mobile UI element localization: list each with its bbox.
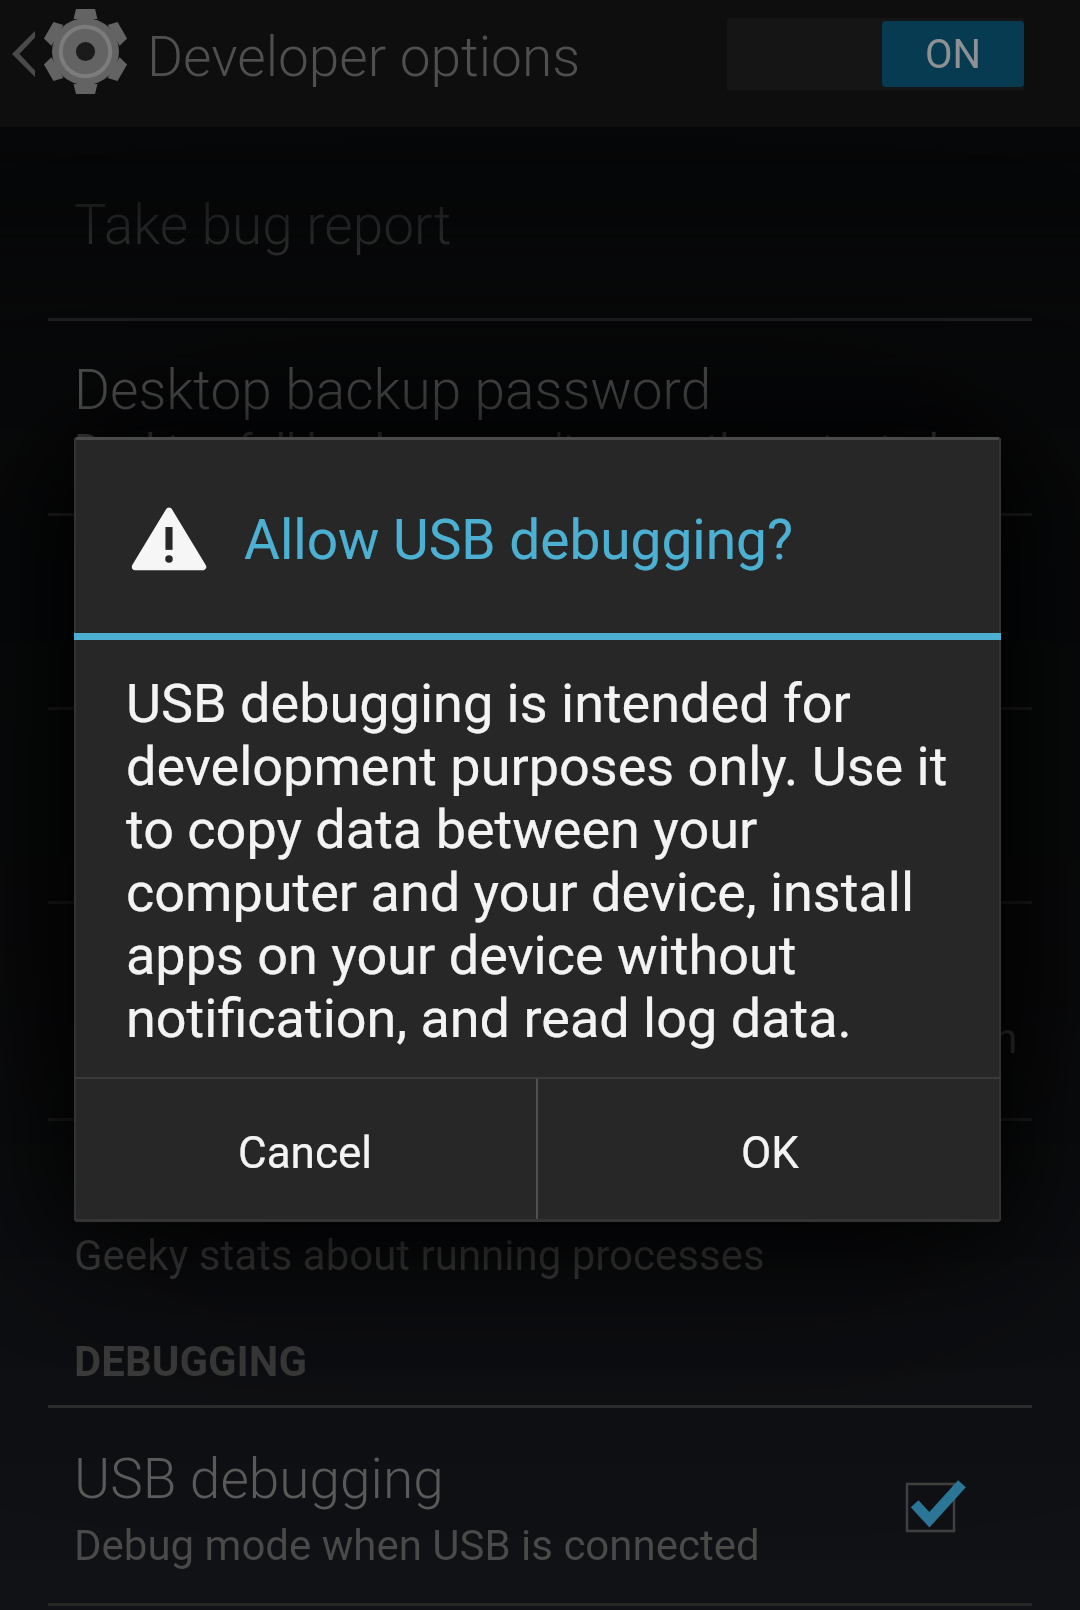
staticText: USB debugging [74,1447,444,1511]
button[interactable]: Navigate up [0,0,136,127]
staticText: Wait for debugger [74,941,505,1005]
staticText: Screen will never sleep while charging [74,626,779,675]
staticText: Geeky stats about running processes [74,1231,765,1280]
button[interactable]: Cancel [74,1079,536,1219]
button[interactable]: USB debugging checkbox [905,1480,965,1534]
staticText: Take bug report [74,193,452,257]
staticText: OK [741,1127,799,1179]
button[interactable] [0,1408,1080,1603]
button[interactable] [0,710,1080,901]
button[interactable] [0,127,1080,318]
staticText: Cancel [238,1127,372,1179]
staticText: Desktop full backups aren't currently pr… [74,425,939,474]
button[interactable] [0,516,1080,707]
staticText: Developer options [147,25,581,89]
button[interactable]: Developer options on/off [727,18,1024,90]
button[interactable] [0,1121,1080,1309]
button[interactable] [0,321,1080,513]
staticText: USB debugging is intended for developmen… [126,672,976,1050]
staticText: DEBUGGING [74,1337,308,1386]
button[interactable] [0,904,1080,1118]
staticText: Stay awake [74,553,349,617]
staticText: Select debug app [74,747,490,811]
staticText: Show CPU usage [74,1158,489,1222]
staticText: No debug application set [74,820,540,869]
staticText: Allow USB debugging? [244,508,793,572]
staticText: Desktop backup password [74,358,712,422]
staticText: Debug mode when USB is connected [74,1521,760,1570]
staticText: Debugged application waits for debugger … [74,1014,1018,1063]
button[interactable]: OK [538,1079,1001,1219]
staticText: ON [925,31,982,78]
